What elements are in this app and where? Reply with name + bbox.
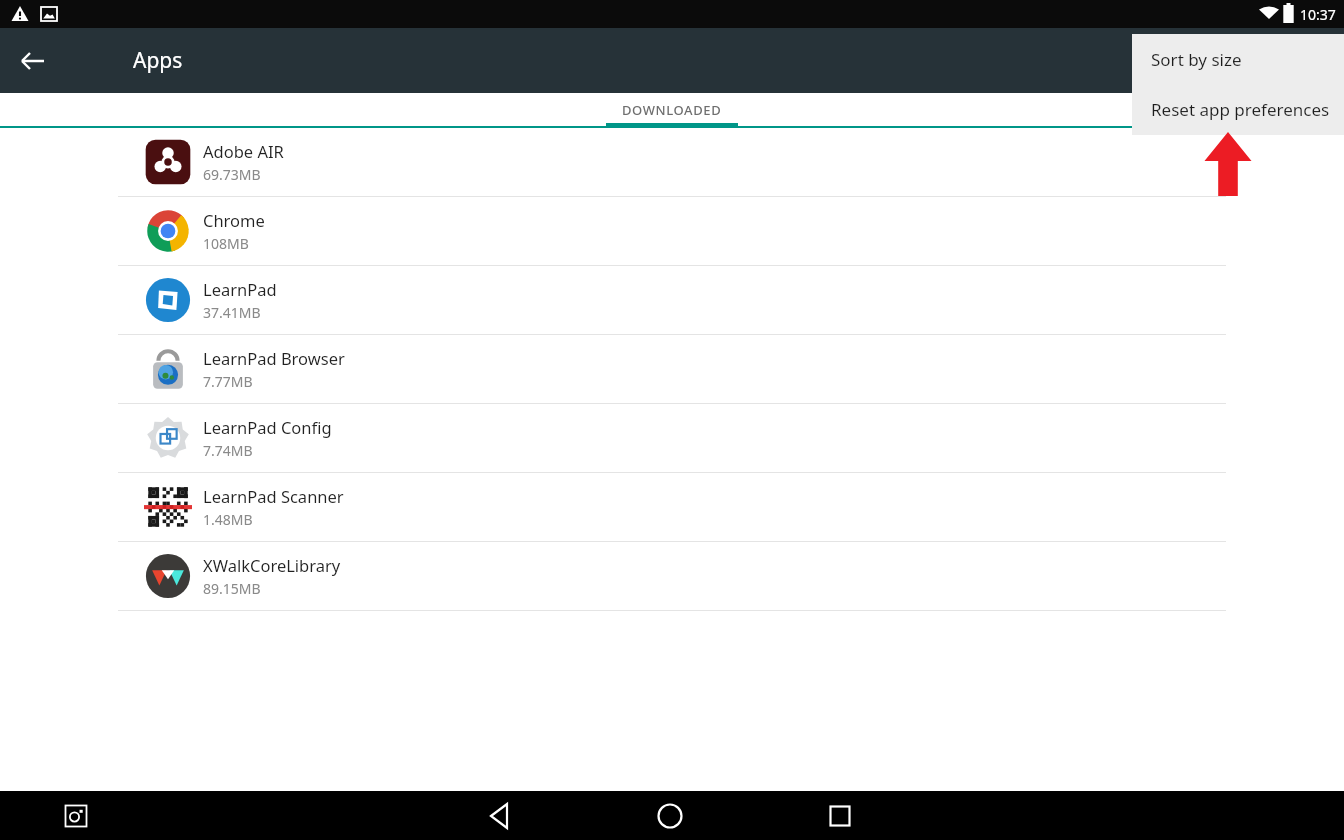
staticText: Adobe AIR	[203, 140, 284, 162]
staticText: 10:37	[1300, 5, 1336, 24]
button[interactable]: Chrome	[0, 197, 1344, 265]
staticText: Chrome	[203, 209, 265, 231]
button[interactable]: XWalkCoreLibrary	[0, 542, 1344, 610]
staticText: Sort by size	[1151, 48, 1242, 71]
button[interactable]: Recent apps	[816, 792, 864, 840]
staticText: LearnPad Scanner	[203, 485, 344, 507]
button[interactable]: Sort by size	[1132, 34, 1344, 84]
button[interactable]: Home	[646, 792, 694, 840]
staticText: 69.73MB	[203, 165, 261, 184]
button[interactable]: Screenshot	[56, 796, 96, 836]
staticText: Reset app preferences	[1151, 98, 1330, 121]
button[interactable]: Adobe AIR	[0, 128, 1344, 196]
button[interactable]: LearnPad	[0, 266, 1344, 334]
staticText: LearnPad	[203, 278, 277, 300]
button[interactable]: DOWNLOADED	[606, 93, 738, 126]
staticText: 7.77MB	[203, 372, 253, 391]
staticText: 7.74MB	[203, 441, 253, 460]
staticText: 37.41MB	[203, 303, 261, 322]
staticText: LearnPad Config	[203, 416, 332, 438]
button[interactable]: Reset app preferences	[1132, 84, 1344, 135]
button[interactable]: LearnPad Browser	[0, 335, 1344, 403]
staticText: 89.15MB	[203, 579, 261, 598]
button[interactable]: LearnPad Scanner	[0, 473, 1344, 541]
button[interactable]: Back	[476, 792, 524, 840]
staticText: XWalkCoreLibrary	[203, 554, 341, 576]
staticText: LearnPad Browser	[203, 347, 345, 369]
staticText: 1.48MB	[203, 510, 253, 529]
staticText: Apps	[133, 46, 183, 75]
button[interactable]: LearnPad Config	[0, 404, 1344, 472]
button[interactable]: Back	[9, 37, 57, 85]
staticText: DOWNLOADED	[622, 101, 722, 119]
staticText: 108MB	[203, 234, 249, 253]
